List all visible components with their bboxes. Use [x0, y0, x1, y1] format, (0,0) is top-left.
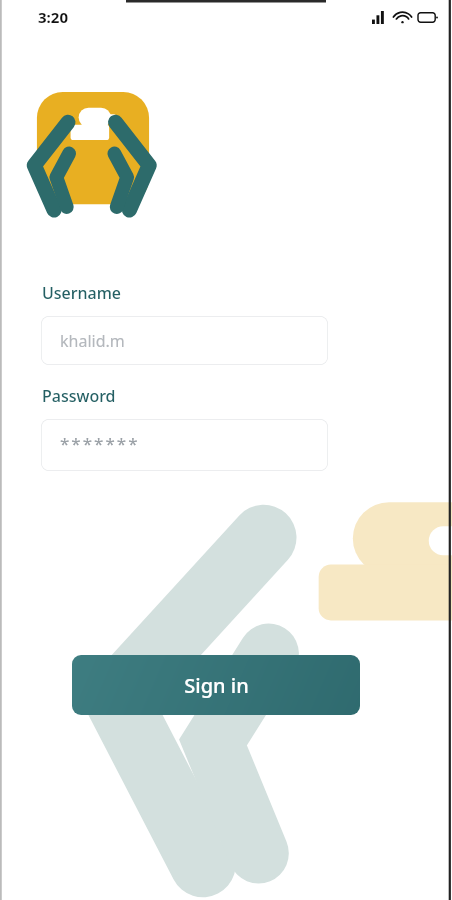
staticText: khalid.m — [60, 330, 125, 352]
staticText: Password — [42, 385, 116, 407]
button[interactable]: khalid.m — [41, 316, 328, 365]
staticText: Username — [42, 282, 122, 304]
staticText: 3:20 — [38, 7, 68, 27]
staticText: ******* — [60, 432, 140, 455]
button[interactable]: ******* — [41, 419, 328, 471]
staticText: Sign in — [184, 672, 249, 699]
button[interactable]: Sign in — [72, 655, 360, 715]
